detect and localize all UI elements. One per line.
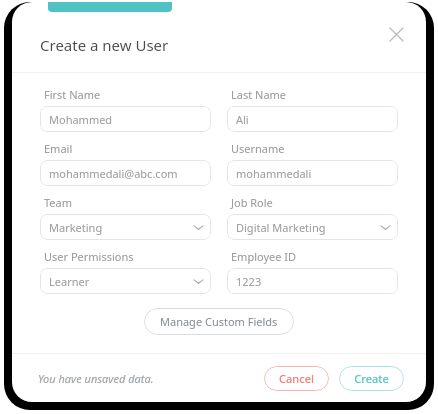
staticText: Email bbox=[44, 141, 73, 156]
staticText: Cancel bbox=[279, 371, 314, 386]
staticText: You have unsaved data. bbox=[38, 371, 154, 386]
staticText: Team bbox=[44, 195, 73, 210]
staticText: Create bbox=[354, 371, 389, 386]
staticText: Employee ID bbox=[231, 249, 297, 264]
button[interactable]: mohammedali@abc.com bbox=[40, 160, 211, 186]
button[interactable]: Mohammed bbox=[40, 106, 211, 132]
button[interactable]: Create bbox=[339, 366, 404, 391]
staticText: User Permissions bbox=[44, 249, 134, 264]
staticText: Ali bbox=[236, 112, 390, 127]
button[interactable]: mohammedali bbox=[227, 160, 398, 186]
staticText: Marketing bbox=[49, 220, 194, 235]
button[interactable]: Cancel bbox=[264, 366, 329, 391]
button[interactable]: Marketing bbox=[40, 214, 211, 240]
staticText: Digital Marketing bbox=[236, 220, 381, 235]
button[interactable]: 1223 bbox=[227, 268, 398, 294]
staticText: Mohammed bbox=[49, 112, 203, 127]
staticText: Learner bbox=[49, 274, 194, 289]
button[interactable]: Close bbox=[380, 18, 412, 50]
button[interactable]: Manage Custom Fields bbox=[144, 308, 294, 335]
staticText: Last Name bbox=[231, 87, 287, 102]
staticText: mohammedali@abc.com bbox=[49, 166, 203, 181]
button[interactable]: Digital Marketing bbox=[227, 214, 398, 240]
button[interactable]: Ali bbox=[227, 106, 398, 132]
staticText: Job Role bbox=[231, 195, 273, 210]
button[interactable]: Learner bbox=[40, 268, 211, 294]
staticText: Manage Custom Fields bbox=[160, 314, 278, 329]
staticText: Username bbox=[231, 141, 285, 156]
staticText: 1223 bbox=[236, 274, 390, 289]
staticText: First Name bbox=[44, 87, 101, 102]
staticText: mohammedali bbox=[236, 166, 390, 181]
staticText: Create a new User bbox=[40, 35, 169, 55]
